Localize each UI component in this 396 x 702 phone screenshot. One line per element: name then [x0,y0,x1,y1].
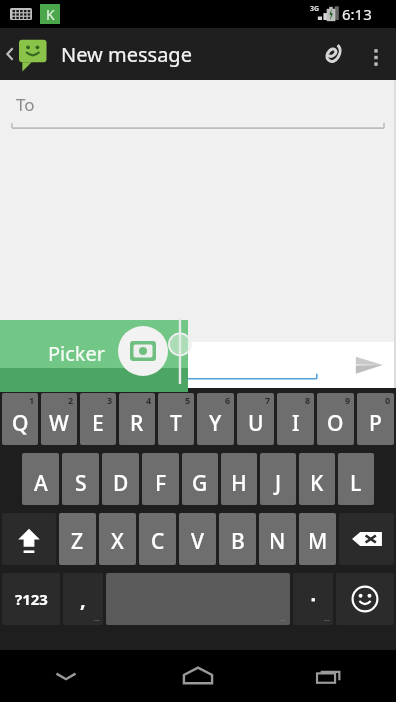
staticText: 0 [385,394,391,406]
staticText: Picker [48,340,106,367]
staticText: H [231,469,247,498]
button[interactable]: Send [342,342,396,388]
staticText: R [130,409,144,438]
button[interactable]: L [338,453,374,505]
staticText: Q [12,409,29,438]
staticText: O [327,409,344,438]
button[interactable]: 4 [119,393,155,445]
button[interactable]: 0 [357,393,394,445]
button[interactable]: Shift [2,513,56,565]
staticText: I [292,409,300,438]
staticText: W [49,409,69,438]
staticText: F [155,469,167,498]
button[interactable]: B [219,513,256,565]
button[interactable]: Z [59,513,96,565]
button[interactable]: 1 [2,393,38,445]
button[interactable]: 9 [317,393,354,445]
button[interactable]: K [299,453,335,505]
staticText: A [34,469,48,498]
button[interactable]: Hide keyboard [0,650,132,702]
staticText: ... [94,614,100,624]
staticText: 7 [265,394,271,406]
staticText: E [92,409,104,438]
staticText: Y [209,409,222,438]
button[interactable]: More options [356,28,396,80]
button[interactable]: X [99,513,136,565]
staticText: To [16,93,35,116]
staticText: P [369,409,382,438]
staticText: S [75,469,87,498]
button[interactable]: C [139,513,176,565]
staticText: C [151,527,165,556]
staticText: 3 [107,394,113,406]
staticText: N [269,527,286,556]
button[interactable]: F [142,453,179,505]
button[interactable]: Navigate up [0,37,53,71]
button[interactable]: A [22,453,59,505]
button[interactable]: D [102,453,139,505]
button[interactable]: 8 [277,393,314,445]
button[interactable]: G [182,453,218,505]
staticText: 9 [345,394,351,406]
button[interactable] [0,320,188,368]
staticText: 1 [29,394,35,406]
staticText: D [113,469,129,498]
button[interactable]: ?123 [2,573,60,625]
button[interactable]: Backspace [339,513,394,565]
button[interactable]: S [62,453,99,505]
staticText: 6 [225,394,231,406]
staticText: V [191,527,204,556]
button[interactable]: H [221,453,257,505]
staticText: U [248,409,264,438]
staticText: 6:13 [342,4,372,24]
staticText: ?123 [15,589,48,609]
staticText: Z [71,527,84,556]
staticText: J [275,469,282,498]
staticText: X [111,527,124,556]
staticText: K [310,469,324,498]
staticText: 8 [305,394,311,406]
staticText: T [170,409,182,438]
staticText: 2 [68,394,74,406]
button[interactable]: V [179,513,216,565]
staticText: 5 [185,394,191,406]
staticText: L [350,469,362,498]
staticText: New message [61,41,192,68]
button[interactable]: Recent apps [264,650,396,702]
button[interactable]: Period [293,573,333,625]
staticText: Type message [22,351,129,373]
staticText: , [80,586,86,613]
button[interactable]: J [260,453,296,505]
button[interactable]: Emoji [336,573,394,625]
staticText: K [46,5,55,24]
staticText: ... [324,614,330,624]
button[interactable]: M [299,513,336,565]
button[interactable]: Attach [308,28,356,80]
button[interactable]: 5 [158,393,194,445]
staticText: 4 [146,394,152,406]
staticText: G [192,469,208,498]
button[interactable]: 7 [237,393,274,445]
staticText: B [231,527,245,556]
button[interactable]: 6 [197,393,234,445]
button[interactable]: Comma [63,573,103,625]
button[interactable]: 2 [41,393,77,445]
button[interactable]: 3 [80,393,116,445]
button[interactable]: N [259,513,296,565]
staticText: M [308,527,328,556]
staticText: 3G [310,4,320,14]
button[interactable]: Home [132,650,264,702]
staticText: ... [280,614,286,624]
